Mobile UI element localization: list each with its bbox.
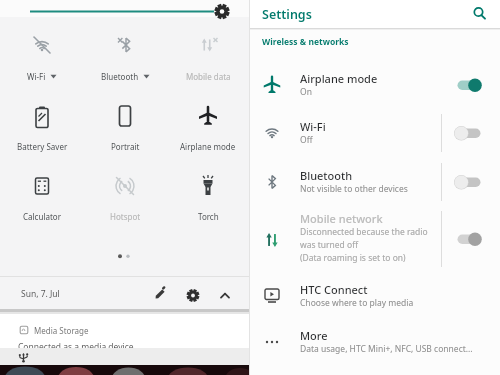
- staticText: was turned off: [300, 239, 359, 251]
- staticText: Battery Saver: [17, 141, 68, 152]
- button[interactable]: HTC Connect: [250, 272, 500, 320]
- staticText: Off: [300, 134, 313, 146]
- button[interactable]: Torch: [167, 172, 249, 224]
- button[interactable]: Wi-Fi: [250, 109, 500, 157]
- staticText: Calculator: [23, 211, 61, 222]
- staticText: Connected as a media device: [18, 341, 134, 348]
- button[interactable]: Airplane mode: [167, 102, 249, 154]
- button[interactable]: Sun, 7. Jul: [0, 277, 250, 309]
- staticText: Disconnected because the radio: [300, 226, 428, 238]
- staticText: Data usage, HTC Mini+, NFC, USB connect.…: [300, 343, 473, 355]
- staticText: HTC Connect: [300, 282, 368, 297]
- staticText: Bluetooth: [300, 168, 353, 183]
- staticText: Media Storage: [34, 325, 89, 336]
- button[interactable]: [454, 124, 484, 142]
- staticText: Wi-Fi: [300, 119, 326, 134]
- button[interactable]: Airplane mode: [250, 61, 500, 109]
- button[interactable]: More: [250, 318, 500, 366]
- staticText: Not visible to other devices: [300, 183, 408, 195]
- staticText: Mobile data: [186, 71, 231, 82]
- button[interactable]: Bluetooth: [84, 32, 166, 84]
- staticText: Portrait: [111, 141, 140, 152]
- staticText: Airplane mode: [180, 141, 236, 152]
- staticText: Settings: [262, 6, 312, 23]
- staticText: Choose where to play media: [300, 297, 414, 309]
- staticText: Torch: [198, 211, 219, 222]
- button[interactable]: [454, 173, 484, 191]
- button[interactable]: Calculator: [1, 172, 83, 224]
- staticText: Airplane mode: [300, 71, 378, 86]
- staticText: More: [300, 328, 328, 343]
- button[interactable]: Wi-Fi: [1, 32, 83, 84]
- button[interactable]: Hotspot: [84, 172, 166, 224]
- button[interactable]: [468, 2, 492, 26]
- staticText: On: [300, 86, 312, 98]
- staticText: Sun, 7. Jul: [21, 288, 60, 300]
- button[interactable]: Mobile network: [250, 206, 500, 272]
- button[interactable]: Bluetooth: [250, 158, 500, 206]
- button[interactable]: Battery Saver: [1, 102, 83, 154]
- staticText: Mobile network: [300, 211, 383, 226]
- button[interactable]: [454, 76, 484, 94]
- staticText: Bluetooth: [101, 71, 139, 82]
- staticText: Hotspot: [110, 211, 141, 222]
- staticText: Wi-Fi: [27, 71, 46, 82]
- button[interactable]: [0, 0, 250, 26]
- button[interactable]: [0, 348, 250, 365]
- button[interactable]: Media Storage: [0, 314, 250, 348]
- button[interactable]: Portrait: [84, 102, 166, 154]
- button[interactable]: [454, 230, 484, 248]
- button[interactable]: Mobile data: [167, 32, 249, 84]
- staticText: (Data roaming is set to on): [300, 252, 406, 264]
- staticText: Wireless & networks: [262, 36, 349, 48]
